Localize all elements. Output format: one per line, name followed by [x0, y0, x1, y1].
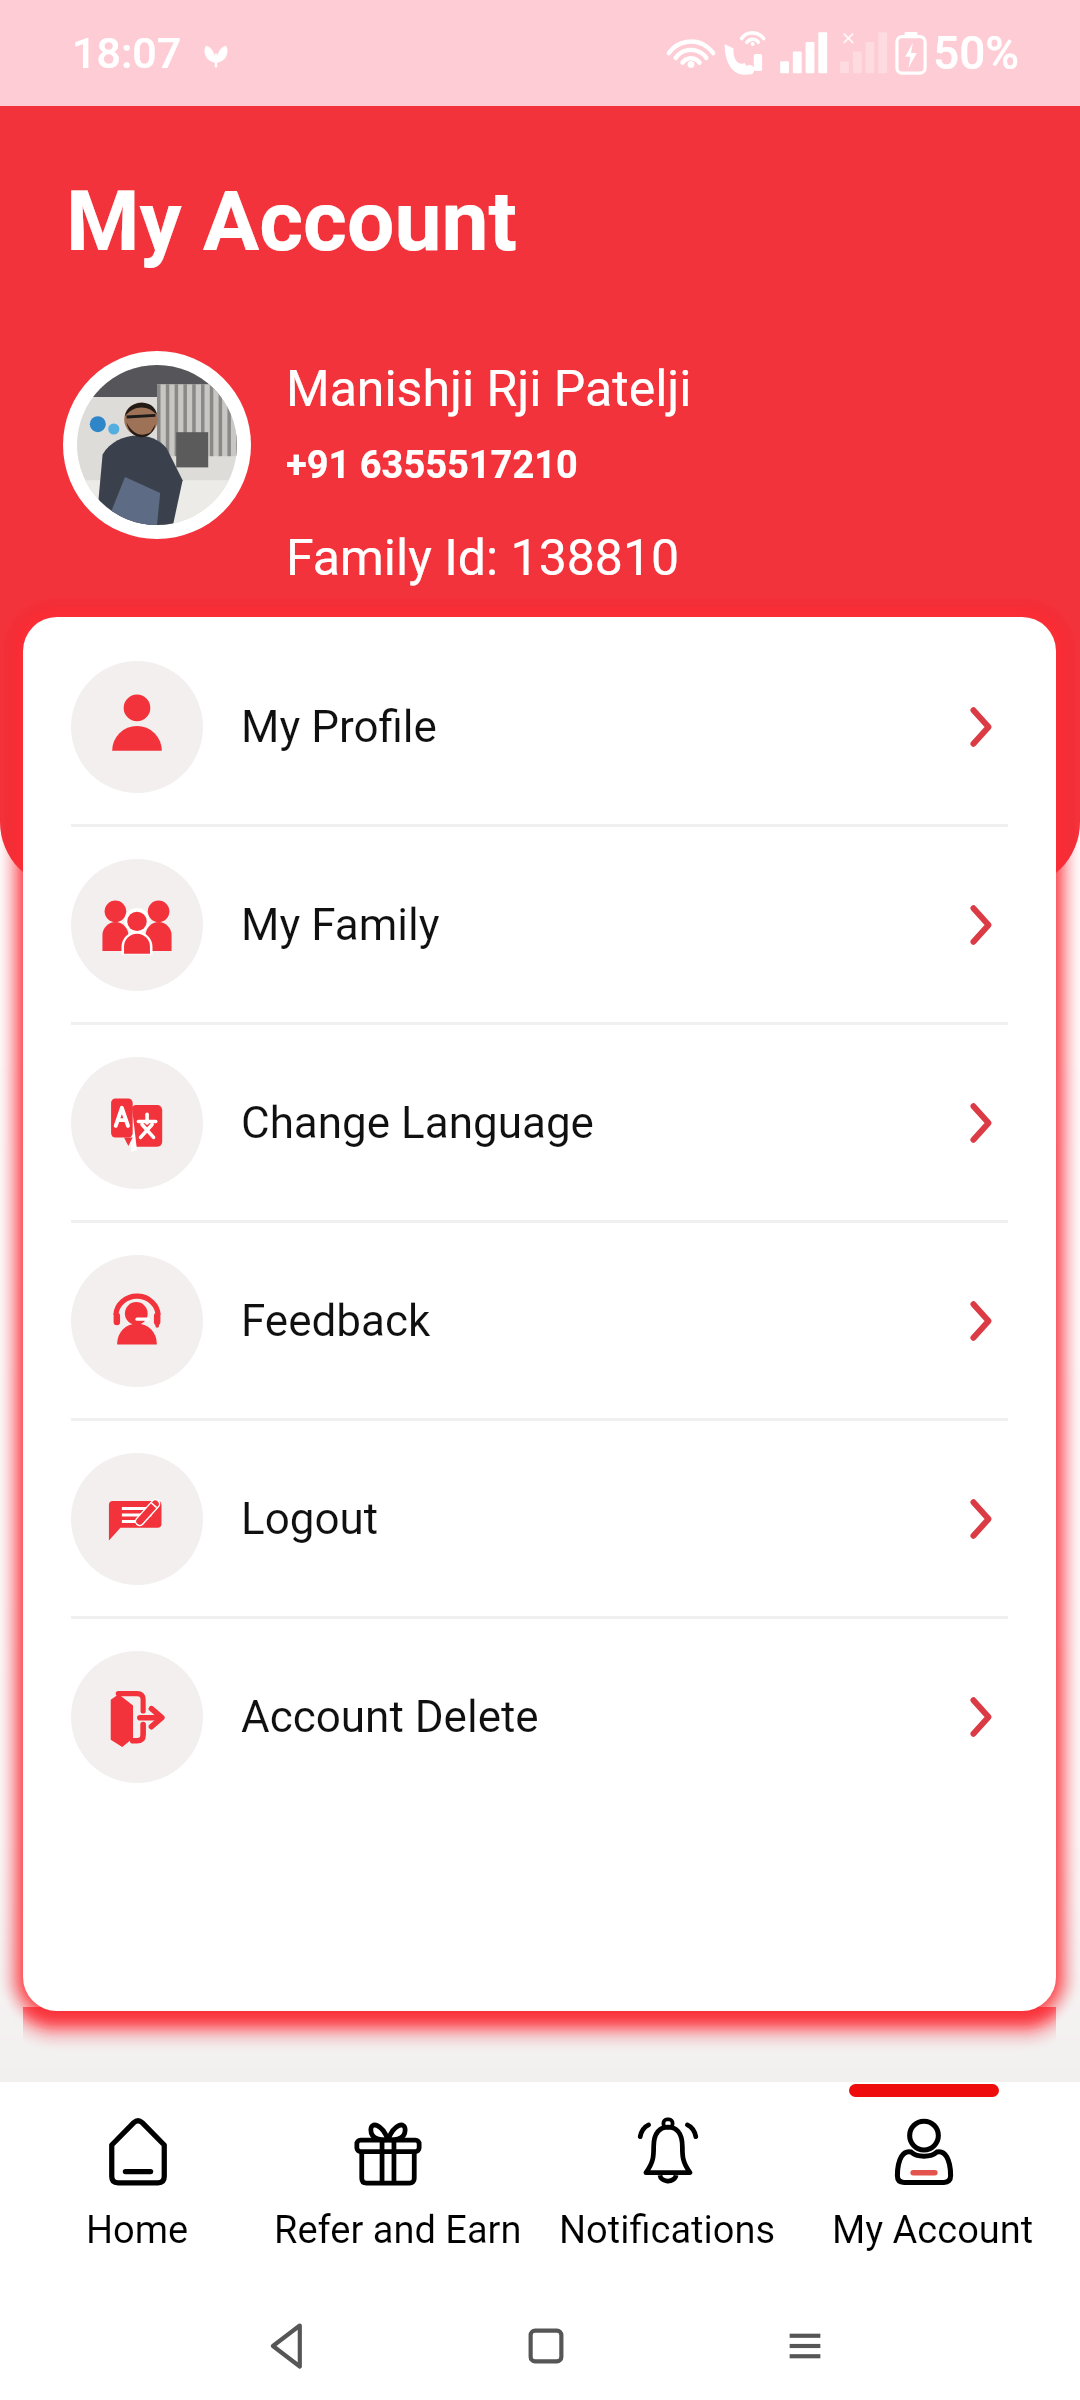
button[interactable]: My Profile	[23, 629, 1056, 824]
button[interactable]: My Family	[23, 827, 1056, 1022]
button[interactable]: Back	[255, 2314, 319, 2378]
staticText: Home	[86, 2208, 189, 2253]
staticText: My Family	[241, 899, 440, 951]
other: Notifications	[633, 2117, 703, 2187]
button[interactable]: Change Language	[23, 1025, 1056, 1220]
staticText: Logout	[241, 1493, 379, 1545]
button[interactable]: Home	[514, 2314, 578, 2378]
staticText: My Account	[66, 172, 517, 270]
button[interactable]: Home	[0, 2082, 274, 2262]
staticText: Feedback	[241, 1295, 431, 1347]
staticText: My Profile	[241, 701, 437, 753]
staticText: Account Delete	[241, 1691, 539, 1743]
staticText: Notifications	[559, 2208, 776, 2253]
button[interactable]: Notifications	[502, 2082, 832, 2262]
button[interactable]: Recents	[773, 2314, 837, 2378]
staticText: 50%	[933, 26, 1020, 80]
button[interactable]: Logout	[23, 1421, 1056, 1616]
button[interactable]: Account Delete	[23, 1619, 1056, 1814]
staticText: Family Id: 138810	[286, 529, 680, 588]
other: My Account	[889, 2117, 959, 2187]
staticText: My Account	[832, 2208, 1016, 2253]
other: Refer and Earn	[353, 2117, 423, 2187]
staticText: +91 6355517210	[286, 443, 578, 488]
button[interactable]: Refer and Earn	[274, 2082, 502, 2262]
staticText: 18:07	[72, 28, 182, 78]
button[interactable]: My Account	[832, 2082, 1016, 2262]
other: Home	[103, 2117, 173, 2187]
staticText: Manishji Rji Patelji	[286, 360, 692, 419]
staticText: Change Language	[241, 1097, 594, 1149]
button[interactable]: Feedback	[23, 1223, 1056, 1418]
staticText: Refer and Earn	[274, 2208, 502, 2253]
